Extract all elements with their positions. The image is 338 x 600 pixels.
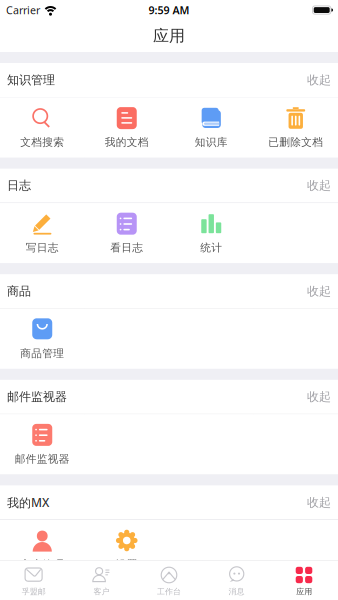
- staticText: 9:59 AM: [148, 3, 189, 17]
- staticText: 知识管理: [7, 73, 55, 87]
- staticText: 商品管理: [20, 347, 64, 360]
- button[interactable]: 知识库: [169, 98, 253, 158]
- staticText: 看日志: [110, 241, 143, 254]
- staticText: 收起: [307, 389, 331, 404]
- staticText: 收起: [307, 73, 331, 87]
- button[interactable]: 客户: [68, 561, 135, 600]
- button[interactable]: 商品: [0, 274, 338, 308]
- staticText: 应用: [153, 26, 185, 46]
- staticText: 消息: [229, 587, 245, 596]
- button[interactable]: 日志: [0, 169, 338, 203]
- button[interactable]: 我的文档: [84, 98, 169, 158]
- staticText: 统计: [200, 241, 222, 254]
- staticText: 客户: [93, 587, 109, 596]
- staticText: 我的MX: [7, 494, 49, 510]
- button[interactable]: 消息: [203, 561, 270, 600]
- staticText: 已删除文档: [268, 136, 323, 149]
- button[interactable]: 知识管理: [0, 63, 338, 97]
- button[interactable]: 邮件监视器: [0, 380, 338, 414]
- staticText: 商品: [7, 284, 31, 298]
- button[interactable]: 邮件监视器: [0, 414, 84, 474]
- button[interactable]: 已删除文档: [253, 98, 338, 158]
- staticText: 邮件监视器: [15, 452, 70, 465]
- button[interactable]: 工作台: [135, 561, 203, 600]
- staticText: 应用: [296, 587, 312, 596]
- staticText: 收起: [307, 178, 331, 193]
- staticText: 写日志: [26, 241, 59, 254]
- button[interactable]: 写日志: [0, 203, 84, 263]
- staticText: 孚盟邮: [22, 587, 46, 596]
- button[interactable]: 我的MX: [0, 485, 338, 519]
- staticText: 我的文档: [105, 136, 149, 149]
- staticText: 知识库: [195, 136, 228, 149]
- button[interactable]: 设置: [84, 520, 169, 560]
- staticText: Carrier: [6, 3, 40, 17]
- button[interactable]: 统计: [169, 203, 253, 263]
- button[interactable]: 客户管理: [0, 520, 84, 560]
- button[interactable]: 孚盟邮: [0, 561, 68, 600]
- staticText: 文档搜索: [20, 136, 64, 149]
- button[interactable]: 看日志: [84, 203, 169, 263]
- staticText: 收起: [307, 495, 331, 510]
- staticText: 客户管理: [20, 558, 64, 571]
- staticText: 工作台: [157, 587, 181, 596]
- button[interactable]: 文档搜索: [0, 98, 84, 158]
- button[interactable]: 应用: [270, 561, 338, 600]
- staticText: 设置: [116, 558, 138, 571]
- staticText: 邮件监视器: [7, 389, 67, 404]
- staticText: 收起: [307, 284, 331, 298]
- button[interactable]: 商品管理: [0, 309, 84, 369]
- staticText: 日志: [7, 178, 31, 193]
